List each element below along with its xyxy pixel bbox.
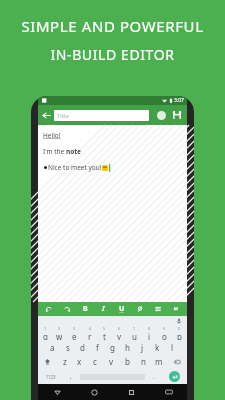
button[interactable]: s bbox=[60, 340, 75, 354]
button[interactable]: ?123 bbox=[38, 369, 64, 384]
staticText: l bbox=[171, 342, 174, 353]
button[interactable]: Title bbox=[54, 110, 149, 121]
button[interactable]: Recents bbox=[113, 384, 150, 400]
staticText: s bbox=[66, 342, 70, 353]
staticText: t bbox=[103, 331, 106, 340]
button[interactable]: f bbox=[90, 340, 105, 354]
button[interactable]: Hide keyboard bbox=[150, 384, 187, 400]
staticText: I'm the bbox=[43, 147, 66, 156]
button[interactable]: , bbox=[64, 369, 78, 384]
button[interactable]: Bullet list bbox=[151, 302, 165, 316]
staticText: 7 bbox=[133, 326, 136, 331]
button[interactable]: 7 bbox=[127, 326, 142, 340]
staticText: 4 bbox=[89, 326, 92, 331]
staticText: y bbox=[117, 331, 122, 340]
button[interactable]: 4 bbox=[82, 326, 97, 340]
staticText: 5 bbox=[103, 326, 106, 331]
staticText: z bbox=[63, 356, 67, 367]
button[interactable]: Shift bbox=[38, 354, 57, 369]
staticText: e bbox=[72, 331, 77, 340]
staticText: p bbox=[177, 331, 182, 340]
button[interactable]: b bbox=[119, 354, 135, 369]
button[interactable]: 1 bbox=[38, 326, 52, 340]
staticText: q bbox=[43, 331, 48, 340]
button[interactable]: Backspace bbox=[167, 354, 187, 369]
staticText: 3 bbox=[73, 326, 76, 331]
staticText: I bbox=[102, 304, 105, 314]
button[interactable]: Enter bbox=[169, 371, 180, 382]
button[interactable]: Italic bbox=[96, 302, 110, 316]
button[interactable]: Save bbox=[169, 107, 185, 123]
staticText: m bbox=[155, 356, 163, 367]
button[interactable]: 5 bbox=[97, 326, 112, 340]
staticText: o bbox=[162, 331, 167, 340]
staticText: , bbox=[70, 373, 72, 381]
button[interactable]: g bbox=[105, 340, 120, 354]
staticText: c bbox=[93, 356, 97, 367]
button[interactable]: 3 bbox=[67, 326, 82, 340]
button[interactable]: Undo bbox=[42, 302, 56, 316]
staticText: b bbox=[125, 356, 130, 367]
button[interactable]: Underline bbox=[115, 302, 129, 316]
button[interactable]: Text color bbox=[133, 302, 147, 316]
staticText: 6 bbox=[118, 326, 121, 331]
button[interactable]: 0 bbox=[172, 326, 187, 340]
staticText: 8 bbox=[148, 326, 151, 331]
button[interactable]: Back bbox=[38, 107, 54, 123]
staticText: h bbox=[125, 342, 130, 353]
button[interactable]: 9 bbox=[157, 326, 172, 340]
staticText: U bbox=[119, 304, 125, 314]
staticText: f bbox=[96, 342, 99, 353]
button[interactable]: Redo bbox=[60, 302, 74, 316]
button[interactable]: c bbox=[87, 354, 103, 369]
staticText: i bbox=[148, 331, 151, 340]
staticText: 2 bbox=[58, 326, 61, 331]
staticText: Hello! bbox=[43, 131, 61, 140]
staticText: SIMPLE AND POWERFUL bbox=[21, 16, 204, 36]
staticText: Nice to meet you! bbox=[48, 163, 102, 172]
staticText: x bbox=[77, 356, 82, 367]
staticText: note bbox=[66, 147, 81, 156]
staticText: r bbox=[88, 331, 92, 340]
staticText: B bbox=[83, 304, 88, 314]
staticText: . bbox=[153, 373, 155, 381]
staticText: n bbox=[141, 356, 146, 367]
staticText: a bbox=[50, 342, 55, 353]
button[interactable]: k bbox=[150, 340, 165, 354]
staticText: ?123 bbox=[46, 374, 56, 380]
staticText: v bbox=[109, 356, 114, 367]
staticText: 0 bbox=[178, 326, 181, 331]
button[interactable]: z bbox=[57, 354, 72, 369]
staticText: IN-BUILD EDITOR bbox=[50, 45, 175, 64]
staticText: Title bbox=[57, 112, 69, 120]
button[interactable]: 2 bbox=[52, 326, 67, 340]
staticText: 9 bbox=[163, 326, 166, 331]
staticText: g bbox=[110, 342, 115, 353]
button[interactable]: l bbox=[165, 340, 180, 354]
staticText: j bbox=[141, 342, 144, 353]
staticText: w bbox=[56, 331, 63, 340]
button[interactable]: Voice input bbox=[175, 317, 183, 325]
button[interactable]: . bbox=[147, 369, 161, 384]
button[interactable]: h bbox=[120, 340, 135, 354]
button[interactable]: j bbox=[135, 340, 150, 354]
button[interactable]: Home bbox=[76, 384, 113, 400]
button[interactable]: 6 bbox=[112, 326, 127, 340]
staticText: d bbox=[80, 342, 85, 353]
staticText: 1 bbox=[44, 326, 47, 331]
staticText: u bbox=[132, 331, 137, 340]
button[interactable]: Note color bbox=[153, 107, 169, 123]
button[interactable]: Bold bbox=[78, 302, 92, 316]
staticText: k bbox=[155, 342, 160, 353]
button[interactable]: 8 bbox=[142, 326, 157, 340]
button[interactable]: d bbox=[75, 340, 90, 354]
button[interactable]: v bbox=[103, 354, 119, 369]
button[interactable]: n bbox=[135, 354, 151, 369]
button[interactable]: Quote bbox=[169, 302, 183, 316]
button[interactable]: m bbox=[151, 354, 167, 369]
button[interactable]: x bbox=[72, 354, 87, 369]
button[interactable]: a bbox=[45, 340, 60, 354]
button[interactable]: Back bbox=[38, 384, 76, 400]
staticText: 3:07 bbox=[174, 97, 184, 104]
